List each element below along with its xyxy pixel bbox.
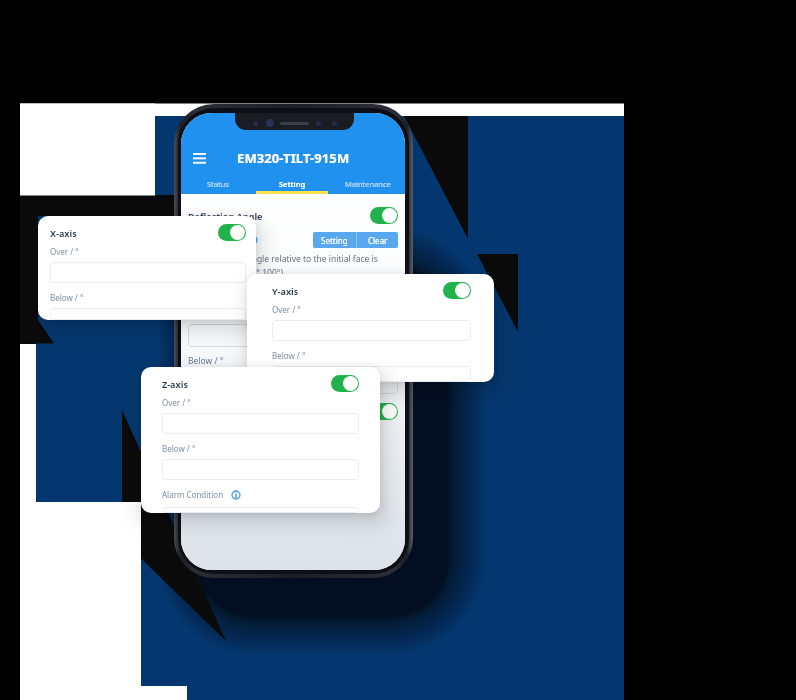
button[interactable]: Enable [443,282,471,299]
button[interactable]: Enable [218,224,246,241]
staticText: Below / ° [162,443,196,454]
staticText: The deflection angle relative to the ini… [188,253,378,265]
staticText: Over / ° [162,397,191,408]
staticText: Setting [321,235,348,246]
staticText: in the range of (0°,100°). [188,267,286,279]
button[interactable]: Clear [357,232,398,248]
staticText: Below / ° [272,350,306,361]
staticText: Alarm Condition [162,489,224,500]
staticText: EM320-TILT-915M [237,149,350,167]
staticText: Over / ° [50,246,79,257]
button[interactable]: Maintenance [330,173,405,194]
button[interactable]: Enable [370,207,398,224]
button[interactable]: Enable [370,403,398,420]
staticText: Initial Surface [188,234,243,246]
staticText: X-axis [50,227,77,239]
button[interactable]: X-axis [38,216,256,320]
staticText: Over / ° [188,308,217,319]
button[interactable]: Setting [313,232,356,248]
button[interactable]: Setting [255,173,330,194]
button[interactable]: Z-axis [141,367,380,513]
button[interactable]: Y-axis [247,274,494,382]
button[interactable]: Menu [189,148,209,168]
staticText: Status [207,179,229,189]
staticText: Setting [279,179,306,189]
staticText: Over / ° [272,304,301,315]
staticText: Y-axis [188,406,215,418]
staticText: Deflection Angle [188,210,263,222]
staticText: Below / ° [188,355,224,366]
staticText: Maintenance [345,179,391,189]
staticText: Below / ° [50,292,84,303]
button[interactable]: Enable [331,375,359,392]
button[interactable]: Status [181,173,255,194]
staticText: Clear [368,235,388,246]
staticText: Y-axis [272,285,299,297]
staticText: Z-axis [162,378,188,390]
